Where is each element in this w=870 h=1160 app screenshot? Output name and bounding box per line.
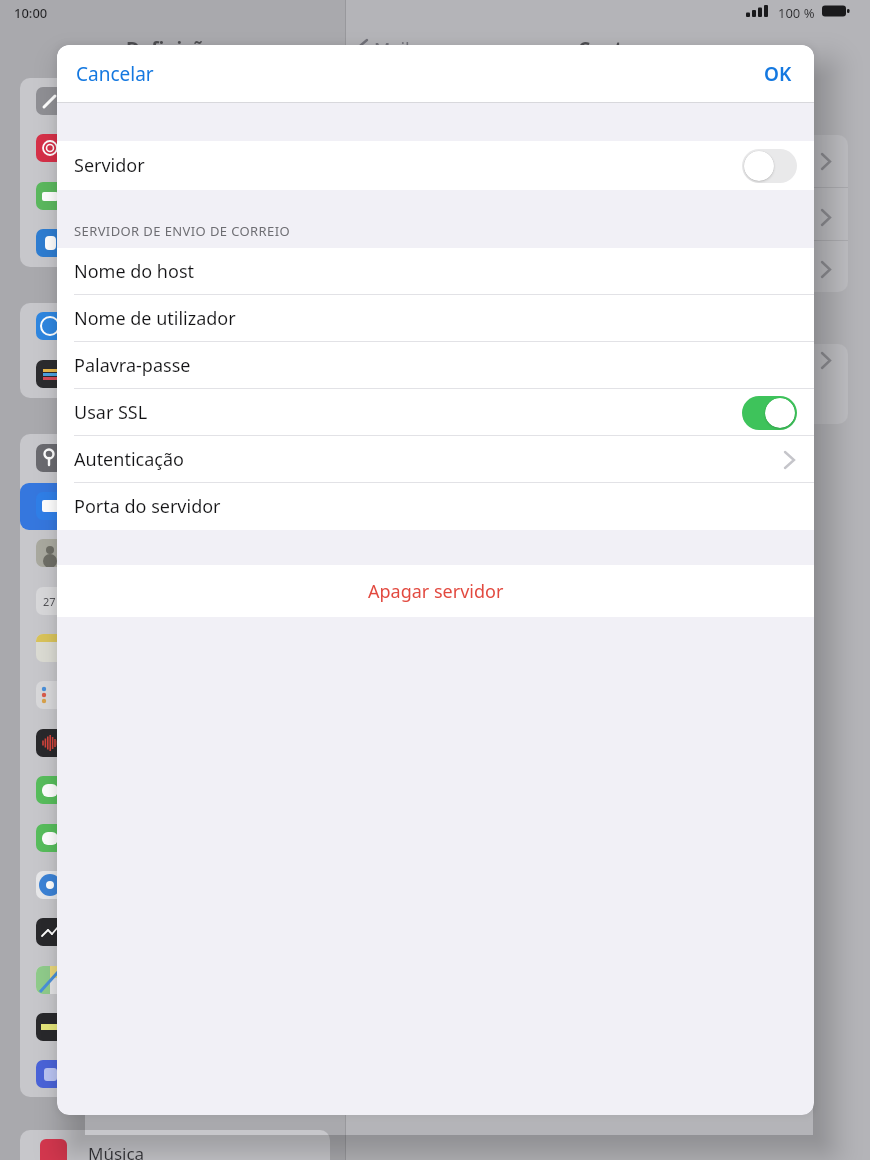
button[interactable] (742, 149, 797, 183)
staticText: Palavra-passe (74, 353, 191, 378)
button[interactable]: Cancelar (76, 61, 154, 87)
button[interactable] (742, 396, 797, 430)
staticText: Mail (374, 37, 410, 62)
button[interactable]: Nome de utilizador (57, 295, 814, 342)
button[interactable]: Nome do host (57, 248, 814, 295)
staticText: 27 (43, 594, 56, 609)
staticText: 100 % (778, 4, 815, 22)
staticText: Nome do host (74, 259, 195, 284)
staticText: Usar SSL (74, 400, 148, 425)
staticText: Definições (126, 36, 225, 62)
staticText: Servidor (74, 153, 145, 178)
button[interactable]: Autenticação (57, 436, 814, 483)
button[interactable]: Palavra-passe (57, 342, 814, 389)
staticText: Nome de utilizador (74, 306, 236, 331)
staticText: Autenticação (74, 447, 184, 472)
button[interactable]: Servidor (57, 141, 814, 190)
staticText: Apagar servidor (368, 579, 504, 604)
staticText: Porta do servidor (74, 494, 221, 519)
button[interactable]: OK (764, 61, 792, 87)
button[interactable]: Apagar servidor (57, 565, 814, 617)
staticText: 10:00 (14, 4, 48, 22)
button[interactable]: Porta do servidor (57, 483, 814, 530)
staticText: SERVIDOR DE ENVIO DE CORREIO (74, 222, 291, 240)
staticText: Música (88, 1142, 145, 1160)
button[interactable]: Usar SSL (57, 389, 814, 436)
staticText: OK (764, 61, 792, 87)
staticText: Contas (578, 36, 644, 62)
staticText: Cancelar (76, 61, 154, 87)
